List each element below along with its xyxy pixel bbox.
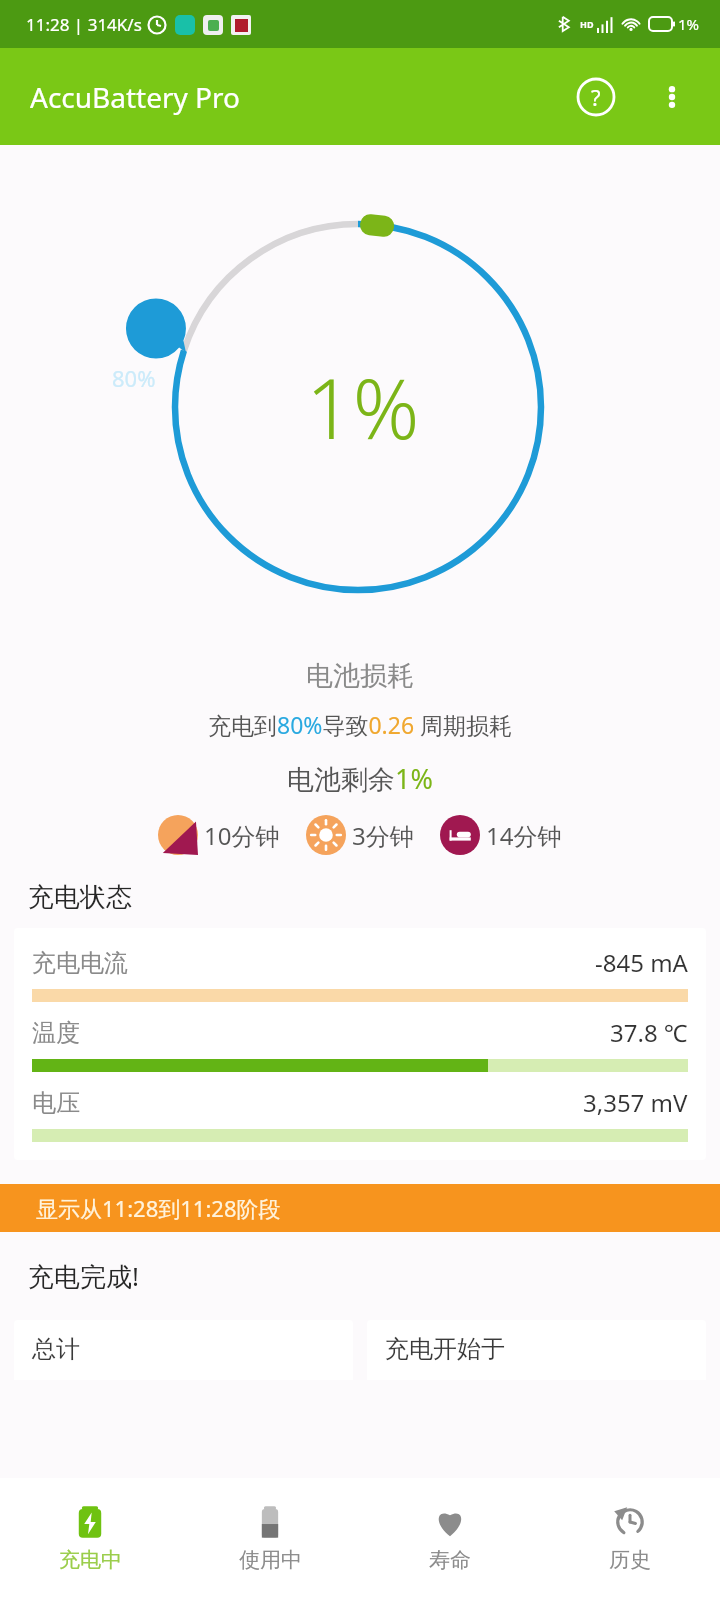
staticText: 80%	[112, 363, 156, 393]
staticText: 总计	[32, 1334, 80, 1364]
staticText: 14分钟	[486, 819, 562, 852]
staticText: 使用中	[239, 1547, 302, 1573]
staticText: AccuBattery Pro	[30, 78, 241, 116]
staticText: 电池损耗	[306, 659, 414, 693]
button[interactable]: 充电中	[0, 1478, 180, 1600]
staticText: 3分钟	[352, 819, 414, 852]
staticText: 充电完成!	[28, 1258, 139, 1294]
button[interactable]: Help	[568, 69, 624, 125]
staticText: 电池剩余1%	[287, 760, 433, 797]
button[interactable]: 充电电流	[14, 928, 706, 1160]
staticText: 充电开始于	[385, 1334, 505, 1364]
staticText: 温度	[32, 1018, 80, 1048]
button[interactable]: 显示从11:28到11:28阶段	[0, 1184, 720, 1232]
button[interactable]: 充电开始于	[367, 1320, 706, 1380]
staticText: 历史	[609, 1547, 651, 1573]
staticText: 1%	[306, 351, 420, 463]
staticText: 充电中	[59, 1547, 122, 1573]
staticText: 10分钟	[204, 819, 280, 852]
button[interactable]: 使用中	[180, 1478, 360, 1600]
staticText: 寿命	[429, 1547, 471, 1573]
staticText: 37.8 ℃	[610, 1016, 688, 1049]
staticText: 充电电流	[32, 948, 128, 978]
staticText: 电压	[32, 1088, 80, 1118]
staticText: -845 mA	[595, 946, 688, 979]
staticText: 1%	[678, 14, 700, 34]
staticText: 3,357 mV	[583, 1086, 688, 1119]
staticText: ?	[591, 82, 601, 112]
staticText: 充电状态	[28, 881, 132, 914]
staticText: 显示从11:28到11:28阶段	[36, 1193, 281, 1223]
staticText: HD	[580, 18, 594, 30]
staticText: 充电到80%导致0.26 周期损耗	[208, 709, 513, 740]
button[interactable]: 寿命	[360, 1478, 540, 1600]
button[interactable]: 总计	[14, 1320, 353, 1380]
button[interactable]: More options	[644, 69, 700, 125]
staticText: 11:28 | 314K/s	[26, 13, 142, 36]
button[interactable]: 历史	[540, 1478, 720, 1600]
